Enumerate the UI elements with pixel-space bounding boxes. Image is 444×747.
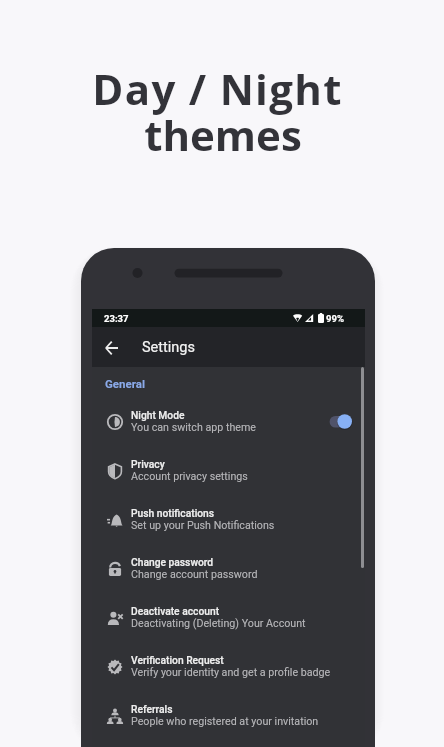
- button[interactable]: Night Mode: [92, 397, 365, 446]
- staticText: Account privacy settings: [131, 470, 248, 483]
- button[interactable]: Change password: [92, 544, 365, 593]
- staticText: Night Mode: [131, 409, 185, 421]
- staticText: People who registered at your invitation: [131, 715, 319, 728]
- staticText: Push notifications: [131, 507, 215, 519]
- staticText: Settings: [142, 339, 195, 356]
- staticText: 23:37: [104, 313, 129, 324]
- staticText: themes: [144, 106, 302, 163]
- staticText: Day / Night: [92, 60, 343, 117]
- button[interactable]: Referrals: [92, 691, 365, 740]
- staticText: General: [105, 377, 145, 390]
- staticText: Deactivating (Deleting) Your Account: [131, 617, 306, 630]
- staticText: Change account password: [131, 568, 258, 581]
- staticText: 99%: [326, 313, 344, 324]
- staticText: Verify your identity and get a profile b…: [131, 666, 331, 679]
- staticText: Change password: [131, 556, 214, 568]
- staticText: Verification Request: [131, 654, 224, 666]
- button[interactable]: Back: [98, 335, 124, 361]
- button[interactable]: Privacy: [92, 446, 365, 495]
- button[interactable]: Verification Request: [92, 642, 365, 691]
- button[interactable]: Night mode toggle: [327, 411, 353, 433]
- staticText: Deactivate account: [131, 605, 220, 617]
- button[interactable]: Push notifications: [92, 495, 365, 544]
- staticText: Set up your Push Notifications: [131, 519, 275, 532]
- staticText: Referrals: [131, 703, 173, 715]
- staticText: You can switch app theme: [131, 421, 257, 434]
- button[interactable]: Deactivate account: [92, 593, 365, 642]
- staticText: Privacy: [131, 458, 165, 470]
